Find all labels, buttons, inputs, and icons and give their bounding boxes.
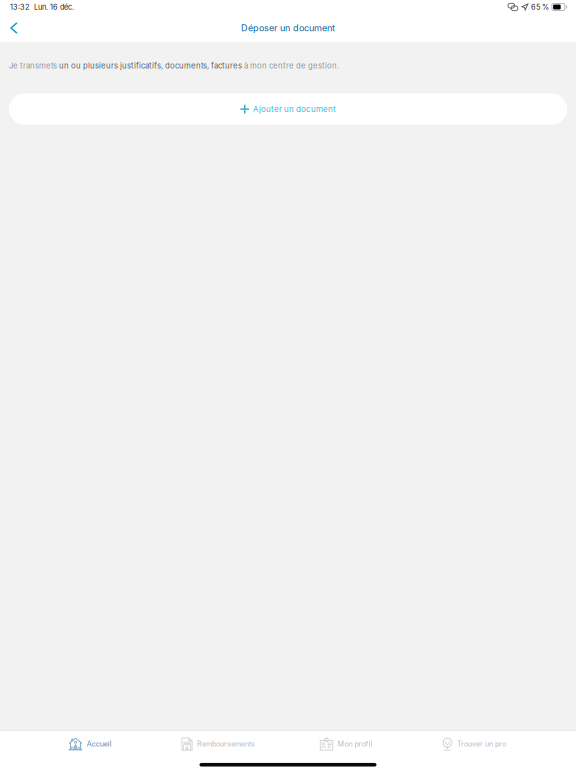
staticText: Mon profil xyxy=(338,740,373,748)
staticText: Je transmets xyxy=(9,61,59,70)
staticText: 65 % xyxy=(531,3,549,11)
staticText: Déposer un document xyxy=(241,22,335,33)
staticText: Accueil xyxy=(87,740,112,748)
staticText: à mon centre de gestion. xyxy=(242,61,339,70)
staticText: Remboursements xyxy=(197,740,255,748)
staticText: 13:32 xyxy=(10,3,29,11)
staticText: Ajouter un document xyxy=(253,104,336,114)
staticText: Lun. 16 déc. xyxy=(34,3,74,11)
staticText: un ou plusieurs justificatifs, documents… xyxy=(59,61,242,70)
button[interactable]: Remboursements xyxy=(154,733,282,755)
button[interactable]: Retour xyxy=(0,15,28,41)
button[interactable]: Accueil xyxy=(26,733,154,755)
staticText: Trouver un pro xyxy=(457,740,506,748)
button[interactable]: Ajouter un document xyxy=(9,93,567,125)
button[interactable]: Trouver un pro xyxy=(410,733,538,755)
button[interactable]: Mon profil xyxy=(282,733,410,755)
